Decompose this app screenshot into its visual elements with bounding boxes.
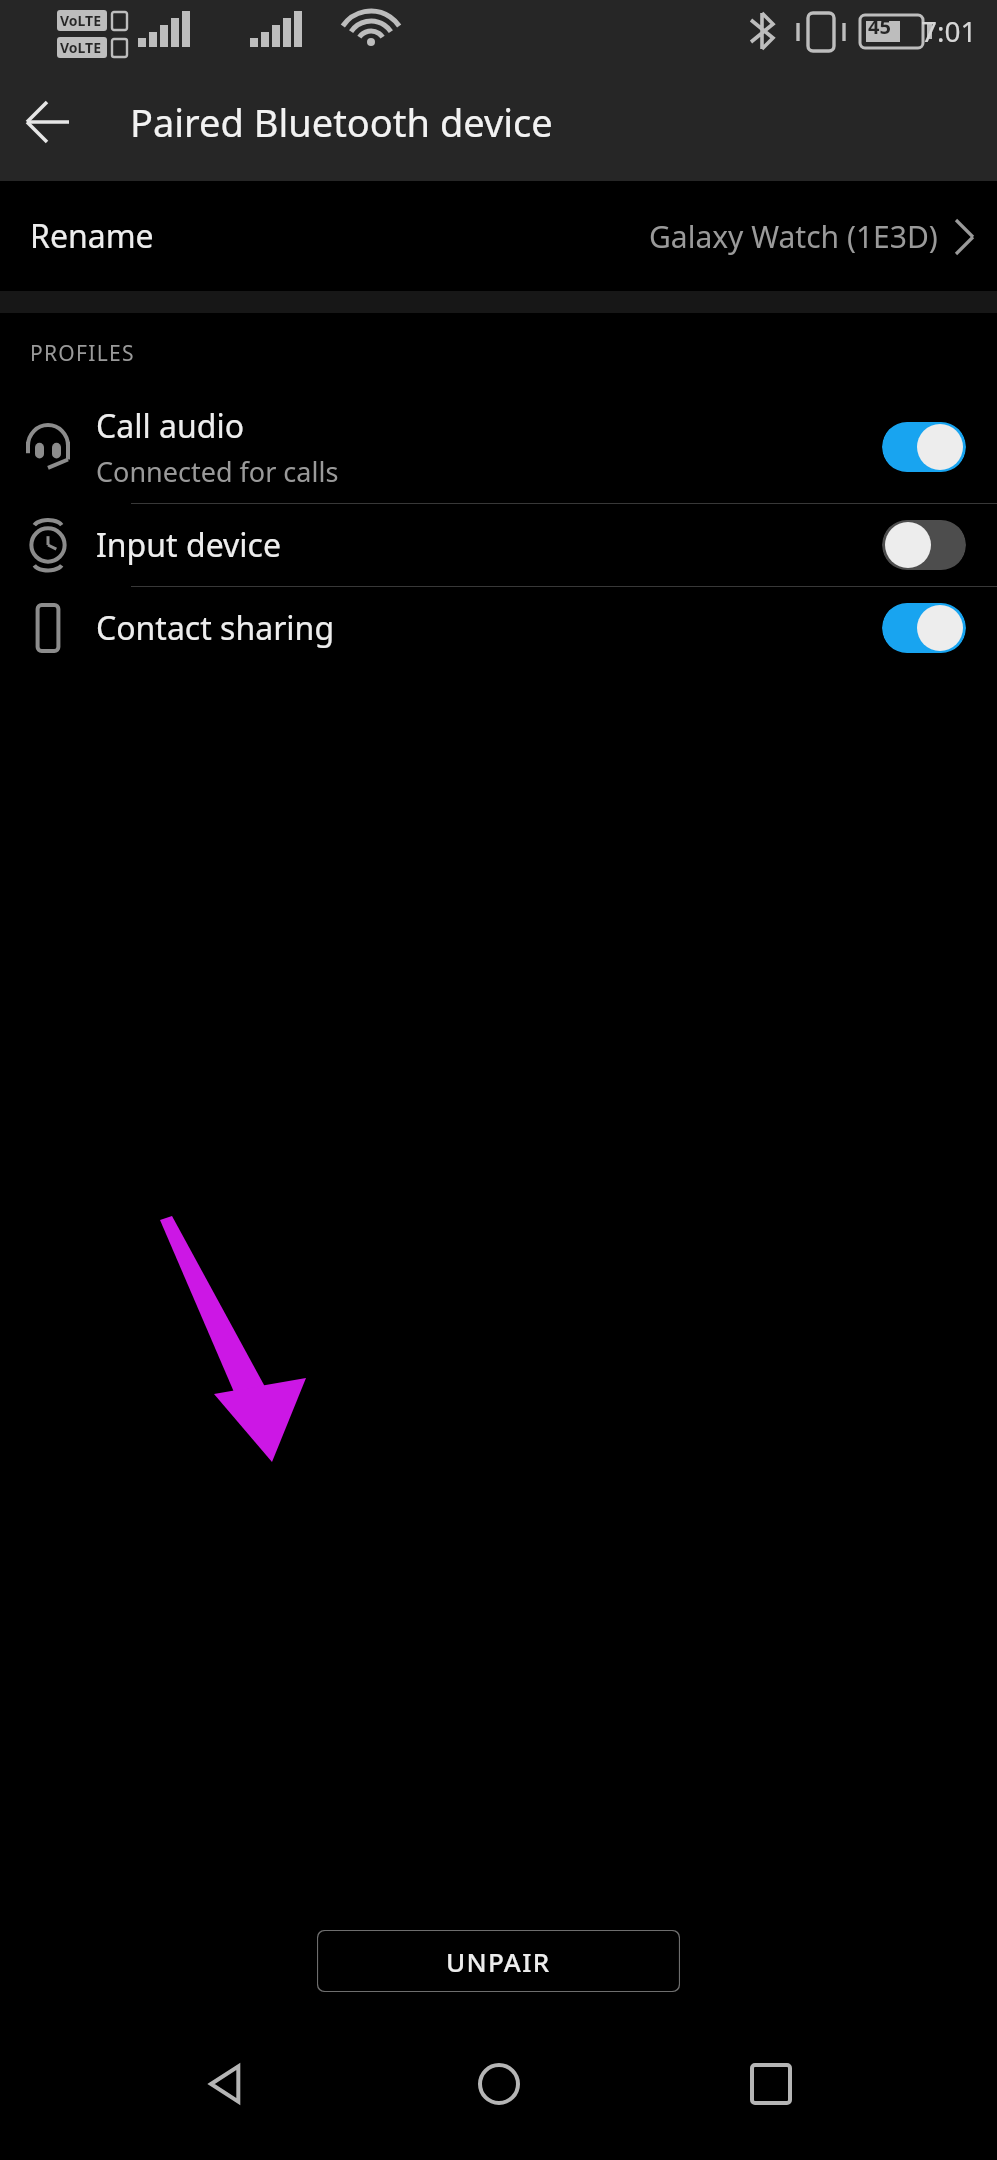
staticText: Paired Bluetooth device <box>130 96 553 148</box>
staticText: UNPAIR <box>446 1944 551 1979</box>
staticText: Rename <box>30 214 154 258</box>
button[interactable]: Input device <box>0 504 997 586</box>
staticText: VoLTE <box>60 11 102 30</box>
staticText: Contact sharing <box>96 606 335 650</box>
staticText: 7:01 <box>921 12 977 50</box>
button[interactable]: Home <box>453 2038 545 2130</box>
staticText: Input device <box>96 523 281 567</box>
button[interactable]: Call audio toggle <box>882 420 966 474</box>
button[interactable]: Call audio <box>0 391 997 503</box>
staticText: PROFILES <box>30 339 135 368</box>
button[interactable]: UNPAIR <box>317 1930 680 1992</box>
button[interactable]: Back <box>14 87 84 157</box>
button[interactable]: Recents <box>725 2038 817 2130</box>
staticText: Galaxy Watch (1E3D) <box>649 216 938 257</box>
staticText: 45 <box>868 13 891 40</box>
staticText: Call audio <box>96 404 245 448</box>
button[interactable]: Back <box>180 2038 272 2130</box>
button[interactable]: Contact sharing toggle <box>882 601 966 655</box>
button[interactable]: Contact sharing <box>0 587 997 669</box>
staticText: VoLTE <box>60 38 102 57</box>
button[interactable]: Rename <box>0 181 997 291</box>
button[interactable]: Input device toggle <box>882 518 966 572</box>
staticText: Connected for calls <box>96 453 339 490</box>
